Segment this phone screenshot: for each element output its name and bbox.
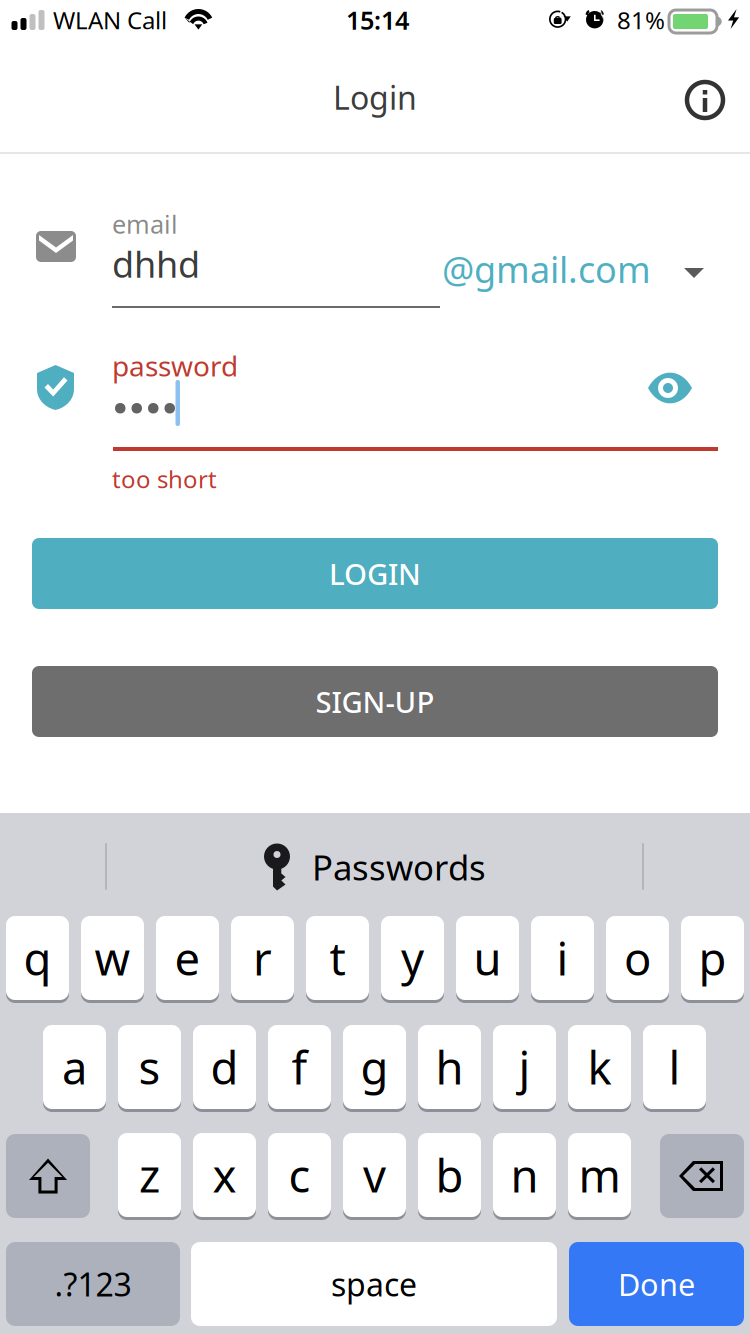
button[interactable]: c [268, 1134, 331, 1218]
staticText: email [112, 207, 178, 241]
button[interactable]: f [268, 1026, 331, 1110]
staticText: l [668, 1037, 680, 1097]
button[interactable]: a [43, 1026, 106, 1110]
staticText: .?123 [54, 1263, 131, 1305]
staticText: WLAN Call [53, 4, 167, 36]
staticText: LOGIN [329, 554, 421, 593]
staticText: v [363, 1145, 386, 1205]
button[interactable]: space [191, 1242, 557, 1326]
button[interactable]: k [568, 1026, 631, 1110]
staticText: Login [333, 76, 417, 118]
staticText: f [291, 1037, 307, 1097]
button[interactable]: b [418, 1134, 481, 1218]
staticText: password [112, 347, 238, 384]
staticText: 81% [617, 4, 665, 36]
staticText: o [624, 928, 651, 988]
button[interactable]: Passwords [264, 839, 486, 895]
staticText: too short [112, 463, 217, 495]
staticText: r [253, 928, 272, 988]
button[interactable]: s [118, 1026, 181, 1110]
button[interactable]: Show password [634, 356, 706, 420]
button[interactable]: u [456, 917, 519, 1001]
button[interactable]: l [643, 1026, 706, 1110]
staticText: 15:14 [346, 3, 409, 37]
button[interactable]: r [231, 917, 294, 1001]
staticText: e [174, 928, 200, 988]
staticText: space [331, 1263, 417, 1305]
staticText: n [510, 1145, 538, 1205]
staticText: h [435, 1037, 463, 1097]
staticText: q [23, 928, 51, 988]
staticText: SIGN-UP [315, 682, 434, 721]
button[interactable]: Shift [6, 1134, 90, 1218]
button[interactable]: n [493, 1134, 556, 1218]
staticText: @gmail.com [442, 245, 651, 293]
button[interactable]: o [606, 917, 669, 1001]
staticText: y [401, 928, 424, 988]
button[interactable]: w [81, 917, 144, 1001]
button[interactable]: Delete [660, 1134, 744, 1218]
button[interactable]: .?123 [6, 1242, 180, 1326]
button[interactable]: i [531, 917, 594, 1001]
button[interactable]: LOGIN [32, 538, 718, 609]
button[interactable]: v [343, 1134, 406, 1218]
button[interactable]: Info [668, 63, 742, 137]
staticText: j [518, 1037, 530, 1097]
button[interactable]: g [343, 1026, 406, 1110]
button[interactable]: j [493, 1026, 556, 1110]
staticText: s [138, 1037, 160, 1097]
button[interactable]: q [6, 917, 69, 1001]
staticText: m [578, 1145, 620, 1205]
button[interactable]: t [306, 917, 369, 1001]
button[interactable]: @gmail.com [442, 245, 722, 293]
staticText: p [698, 928, 726, 988]
staticText: z [139, 1145, 160, 1205]
button[interactable]: d [193, 1026, 256, 1110]
staticText: u [473, 928, 501, 988]
staticText: d [210, 1037, 238, 1097]
staticText: c [288, 1145, 310, 1205]
staticText: Passwords [312, 844, 486, 890]
staticText: t [329, 928, 345, 988]
staticText: i [556, 928, 568, 988]
staticText: b [435, 1145, 463, 1205]
staticText: Done [618, 1264, 695, 1304]
button[interactable]: Done [569, 1242, 744, 1326]
staticText: g [360, 1037, 388, 1097]
button[interactable]: z [118, 1134, 181, 1218]
button[interactable]: m [568, 1134, 631, 1218]
button[interactable]: SIGN-UP [32, 666, 718, 737]
button[interactable]: p [681, 917, 744, 1001]
staticText: x [212, 1145, 236, 1205]
staticText: w [94, 928, 130, 988]
button[interactable]: y [381, 917, 444, 1001]
staticText: dhhd [112, 240, 200, 288]
staticText: k [587, 1037, 611, 1097]
button[interactable]: h [418, 1026, 481, 1110]
staticText: a [62, 1037, 87, 1097]
button[interactable]: x [193, 1134, 256, 1218]
button[interactable]: e [156, 917, 219, 1001]
